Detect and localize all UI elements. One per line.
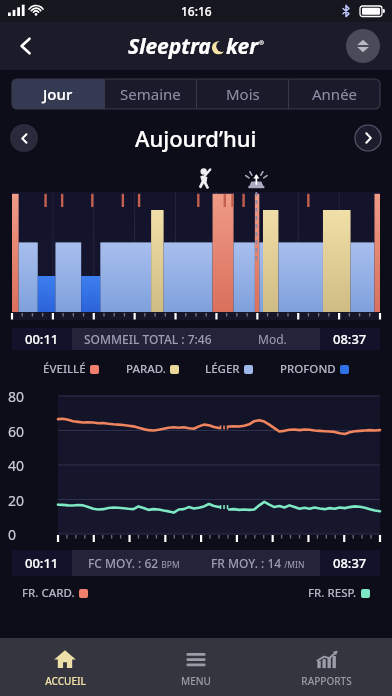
staticText: 00:11 [25,330,59,348]
staticText: Semaine [120,84,181,104]
button[interactable]: Semaine [105,79,196,109]
button[interactable]: Back [0,22,52,70]
button[interactable]: MENU [130,638,261,696]
staticText: /MIN [282,559,305,571]
button[interactable]: ACCUEIL [0,638,130,696]
staticText: MENU [181,674,211,688]
staticText: LÉGER [205,361,240,377]
button[interactable]: Previous day [10,124,38,152]
staticText: 08:37 [333,554,367,572]
staticText: 08:37 [333,330,367,348]
staticText: Mod. [258,331,287,347]
staticText: ker [226,32,259,61]
staticText: PARAD. [126,361,166,377]
staticText: FR MOY. : 14 [211,555,282,571]
button[interactable]: Next day [354,124,382,152]
staticText: 00:11 [25,554,59,572]
staticText: Jour [43,84,73,104]
staticText: SOMMEIL TOTAL : 7:46 [84,331,212,347]
staticText: PROFOND [280,361,336,377]
staticText: ÉVEILLÉ [43,361,86,377]
staticText: Sleeptra [128,32,211,61]
staticText: FC MOY. : 62 [88,555,159,571]
staticText: 60 [8,422,25,441]
staticText: 40 [8,456,25,475]
staticText: Année [312,84,358,104]
staticText: 16:16 [181,3,212,19]
button[interactable]: RAPPORTS [261,638,392,696]
staticText: Mois [226,84,260,104]
button[interactable]: Mois [197,79,288,109]
staticText: 20 [8,491,25,510]
staticText: BPM [159,559,180,571]
button[interactable]: Adjust [346,29,380,63]
staticText: 80 [8,387,25,406]
button[interactable]: Année [289,79,380,109]
staticText: FR. CARD. [22,585,75,601]
staticText: FR. RESP. [308,585,357,601]
staticText: ACCUEIL [45,674,86,688]
staticText: 0 [8,525,17,544]
staticText: ® [259,39,264,47]
staticText: Aujourd’hui [135,123,257,153]
staticText: RAPPORTS [301,674,352,688]
button[interactable]: Jour [12,79,104,109]
